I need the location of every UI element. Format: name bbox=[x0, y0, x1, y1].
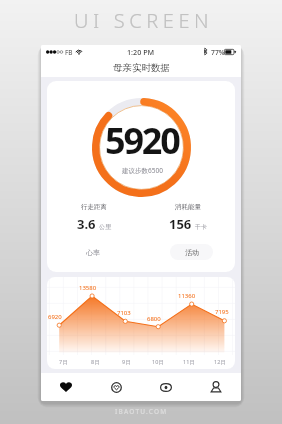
button[interactable]: Health bbox=[91, 373, 141, 401]
button[interactable]: Discover bbox=[141, 373, 191, 401]
button[interactable]: 心率 bbox=[71, 244, 114, 260]
staticText: 8日 bbox=[91, 358, 100, 366]
button[interactable]: 活动 bbox=[170, 244, 213, 260]
staticText: 活动 bbox=[185, 248, 199, 257]
staticText: UI SCREEN bbox=[74, 7, 214, 34]
staticText: 母亲实时数据 bbox=[113, 62, 170, 74]
staticText: 9日 bbox=[122, 358, 131, 366]
staticText: 11日 bbox=[183, 358, 195, 366]
staticText: 7103 bbox=[117, 309, 131, 317]
staticText: 6800 bbox=[147, 315, 161, 323]
staticText: 行走距离 bbox=[81, 203, 107, 211]
staticText: 1:20 PM bbox=[127, 47, 155, 57]
staticText: 11360 bbox=[178, 292, 196, 300]
staticText: FB bbox=[65, 48, 73, 57]
staticText: 10日 bbox=[152, 358, 164, 366]
button[interactable]: Profile bbox=[191, 373, 241, 401]
staticText: 3.6 bbox=[77, 215, 96, 233]
staticText: 6920 bbox=[48, 313, 62, 321]
staticText: 12日 bbox=[214, 358, 226, 366]
button[interactable]: Favourites bbox=[41, 373, 91, 401]
staticText: 156 bbox=[169, 215, 192, 233]
staticText: 千卡 bbox=[195, 223, 207, 231]
staticText: 13580 bbox=[79, 284, 97, 292]
staticText: 消耗能量 bbox=[175, 203, 201, 211]
staticText: 7195 bbox=[215, 308, 229, 316]
staticText: 公里 bbox=[99, 223, 111, 231]
staticText: 建议步数6500 bbox=[122, 166, 163, 175]
staticText: 5920 bbox=[105, 116, 179, 165]
staticText: IBAOTU.COM bbox=[115, 407, 168, 416]
staticText: 心率 bbox=[86, 248, 100, 257]
staticText: 77% bbox=[211, 48, 225, 57]
staticText: 7日 bbox=[59, 358, 68, 366]
